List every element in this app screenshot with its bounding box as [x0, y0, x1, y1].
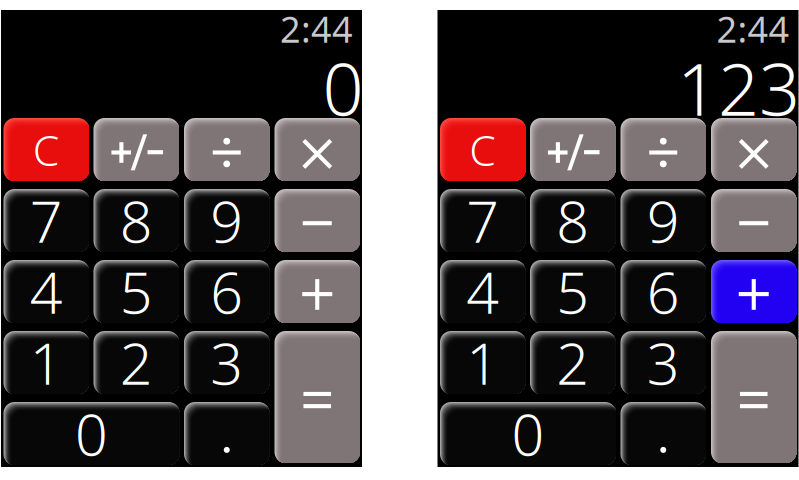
staticText: C: [469, 121, 496, 178]
button[interactable]: Divide: [184, 118, 269, 181]
button[interactable]: 3: [184, 331, 269, 394]
button[interactable]: 0: [3, 402, 179, 465]
staticText: 8: [556, 182, 589, 258]
button[interactable]: 1: [440, 331, 525, 394]
button[interactable]: Minus: [274, 189, 360, 252]
staticText: 4: [466, 253, 499, 329]
button[interactable]: 9: [620, 189, 706, 252]
button[interactable]: 4: [3, 260, 89, 323]
staticText: 2:44: [717, 5, 790, 53]
staticText: 1: [30, 324, 63, 400]
staticText: 0: [75, 395, 108, 471]
staticText: 3: [210, 324, 243, 400]
button[interactable]: 7: [440, 189, 525, 252]
staticText: 123: [677, 40, 799, 136]
button[interactable]: Minus: [711, 189, 796, 252]
button[interactable]: 5: [530, 260, 615, 323]
button[interactable]: Clear: [3, 118, 89, 181]
button[interactable]: Plus minus: [530, 118, 615, 181]
button[interactable]: 7: [3, 189, 89, 252]
staticText: 0: [511, 395, 544, 471]
button[interactable]: 8: [93, 189, 179, 252]
button[interactable]: 6: [620, 260, 706, 323]
staticText: 2:44: [280, 5, 353, 53]
button[interactable]: 1: [3, 331, 89, 394]
staticText: 1: [466, 324, 499, 400]
button[interactable]: 8: [530, 189, 615, 252]
staticText: 9: [647, 182, 680, 258]
button[interactable]: Clear: [440, 118, 525, 181]
button[interactable]: 3: [620, 331, 706, 394]
staticText: 7: [466, 182, 499, 258]
button[interactable]: Multiply: [274, 118, 360, 181]
staticText: 6: [210, 253, 243, 329]
staticText: 0: [322, 40, 363, 136]
staticText: 7: [30, 182, 63, 258]
button[interactable]: 2: [93, 331, 179, 394]
button[interactable]: Decimal point: [184, 402, 269, 465]
button[interactable]: Equals: [711, 331, 796, 463]
staticText: 5: [556, 253, 589, 329]
button[interactable]: Multiply: [711, 118, 796, 181]
button[interactable]: 5: [93, 260, 179, 323]
button[interactable]: Decimal point: [620, 402, 706, 465]
staticText: 2: [556, 324, 589, 400]
staticText: 6: [647, 253, 680, 329]
button[interactable]: 9: [184, 189, 269, 252]
staticText: 8: [120, 182, 153, 258]
button[interactable]: Divide: [620, 118, 706, 181]
button[interactable]: 2: [530, 331, 615, 394]
button[interactable]: Equals: [274, 331, 360, 463]
staticText: 9: [210, 182, 243, 258]
button[interactable]: 0: [440, 402, 616, 465]
staticText: C: [33, 121, 60, 178]
staticText: 2: [120, 324, 153, 400]
button[interactable]: Plus: [274, 260, 360, 323]
staticText: 5: [120, 253, 153, 329]
staticText: 4: [30, 253, 63, 329]
staticText: 3: [647, 324, 680, 400]
button[interactable]: 4: [440, 260, 525, 323]
button[interactable]: Plus minus: [93, 118, 179, 181]
button[interactable]: 6: [184, 260, 269, 323]
button[interactable]: Plus: [711, 260, 796, 323]
